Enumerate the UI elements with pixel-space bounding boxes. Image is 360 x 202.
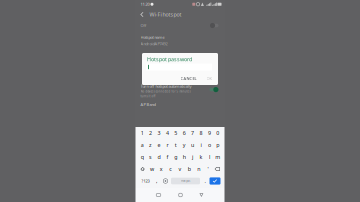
button[interactable]: o — [205, 139, 214, 151]
button[interactable]: 5 — [172, 127, 180, 139]
button[interactable]: g — [172, 151, 180, 163]
staticText: c — [169, 165, 172, 173]
button[interactable]: Home — [174, 188, 186, 202]
button[interactable]: a — [138, 139, 146, 151]
button[interactable]: 0 — [214, 127, 222, 139]
button[interactable]: AP Band — [135, 98, 224, 110]
button[interactable]: j — [188, 151, 197, 163]
button[interactable]: m — [214, 151, 222, 163]
button[interactable]: . — [201, 175, 209, 187]
staticText: e — [157, 141, 160, 149]
button[interactable]: , — [152, 175, 161, 187]
staticText: 1 — [141, 129, 144, 137]
button[interactable]: Shift — [138, 163, 147, 175]
button[interactable]: Space — [170, 175, 201, 187]
staticText: w — [150, 165, 154, 173]
button[interactable]: e — [155, 139, 163, 151]
button[interactable]: r — [163, 139, 172, 151]
staticText: t — [175, 141, 177, 149]
button[interactable]: k — [197, 151, 205, 163]
staticText: a — [141, 141, 144, 149]
button[interactable]: c — [166, 163, 175, 175]
staticText: Français — [181, 179, 190, 183]
button[interactable]: CANCEL — [179, 75, 198, 82]
button[interactable]: 9 — [205, 127, 214, 139]
staticText: 3 — [157, 129, 160, 137]
button[interactable]: Emoji — [161, 175, 170, 187]
button[interactable]: Enter — [209, 175, 221, 187]
button[interactable]: q — [138, 151, 146, 163]
staticText: AP Band — [140, 102, 155, 107]
button[interactable]: v — [175, 163, 185, 175]
button[interactable]: Backspace — [213, 163, 222, 175]
button[interactable]: y — [180, 139, 188, 151]
button[interactable]: p — [214, 139, 222, 151]
staticText: No devices connected for 5 minutes — [140, 90, 190, 93]
staticText: Off — [140, 23, 146, 28]
button[interactable]: d — [155, 151, 163, 163]
button[interactable]: f — [163, 151, 172, 163]
staticText: u — [191, 141, 194, 149]
staticText: turns it off — [140, 94, 155, 98]
staticText: s — [149, 153, 152, 161]
staticText: AndroidAP7492 — [140, 41, 167, 46]
staticText: y — [183, 141, 186, 149]
button[interactable]: b — [185, 163, 194, 175]
button[interactable]: 8 — [197, 127, 205, 139]
staticText: m — [215, 153, 220, 161]
staticText: Wi-Fi hotspot — [149, 11, 181, 18]
button[interactable]: 7 — [188, 127, 197, 139]
staticText: l — [209, 153, 210, 161]
button[interactable]: 1 — [138, 127, 146, 139]
staticText: 9 — [208, 129, 211, 137]
button[interactable]: w — [147, 163, 157, 175]
button[interactable]: OK — [205, 75, 213, 82]
staticText: b — [188, 165, 191, 173]
staticText: 8 — [199, 129, 202, 137]
button[interactable]: 4 — [163, 127, 172, 139]
button[interactable]: h — [180, 151, 188, 163]
staticText: CANCEL — [180, 76, 196, 81]
staticText: OK — [206, 76, 211, 81]
staticText: g — [174, 153, 177, 161]
button[interactable]: Hotspot name — [135, 30, 224, 47]
staticText: Hotspot name — [140, 35, 164, 40]
button[interactable]: Wi-Fi hotspot — [135, 8, 224, 20]
button[interactable]: i — [197, 139, 205, 151]
button[interactable]: x — [157, 163, 166, 175]
staticText: i — [200, 141, 201, 149]
button[interactable]: z — [146, 139, 155, 151]
staticText: k — [199, 153, 202, 161]
staticText: 6 — [183, 129, 186, 137]
button[interactable]: 6 — [180, 127, 188, 139]
staticText: 5 — [174, 129, 177, 137]
staticText: f — [166, 153, 168, 161]
button[interactable]: ' — [203, 163, 213, 175]
staticText: ?123 — [141, 178, 149, 184]
button[interactable]: Recents — [152, 188, 164, 202]
button[interactable]: t — [172, 139, 180, 151]
button[interactable]: u — [188, 139, 197, 151]
staticText: 2 — [149, 129, 152, 137]
button[interactable]: ?123 — [139, 175, 152, 187]
staticText: z — [149, 141, 152, 149]
staticText: Turn off hotspot automatically — [140, 83, 191, 89]
button[interactable]: l — [205, 151, 214, 163]
staticText: q — [141, 153, 144, 161]
staticText: 11:20 — [140, 2, 149, 7]
staticText: 7 — [191, 129, 194, 137]
staticText: j — [192, 153, 193, 161]
button[interactable]: Back — [195, 188, 207, 202]
button[interactable]: n — [194, 163, 203, 175]
button[interactable]: Off — [135, 20, 224, 30]
staticText: 0 — [216, 129, 219, 137]
button[interactable]: Turn off hotspot automatically — [135, 83, 224, 98]
staticText: 4 — [166, 129, 169, 137]
staticText: . — [204, 177, 205, 185]
staticText: n — [197, 165, 200, 173]
button[interactable]: s — [146, 151, 155, 163]
staticText: d — [157, 153, 160, 161]
button[interactable]: 2 — [146, 127, 155, 139]
button[interactable]: 3 — [155, 127, 163, 139]
staticText: o — [208, 141, 211, 149]
